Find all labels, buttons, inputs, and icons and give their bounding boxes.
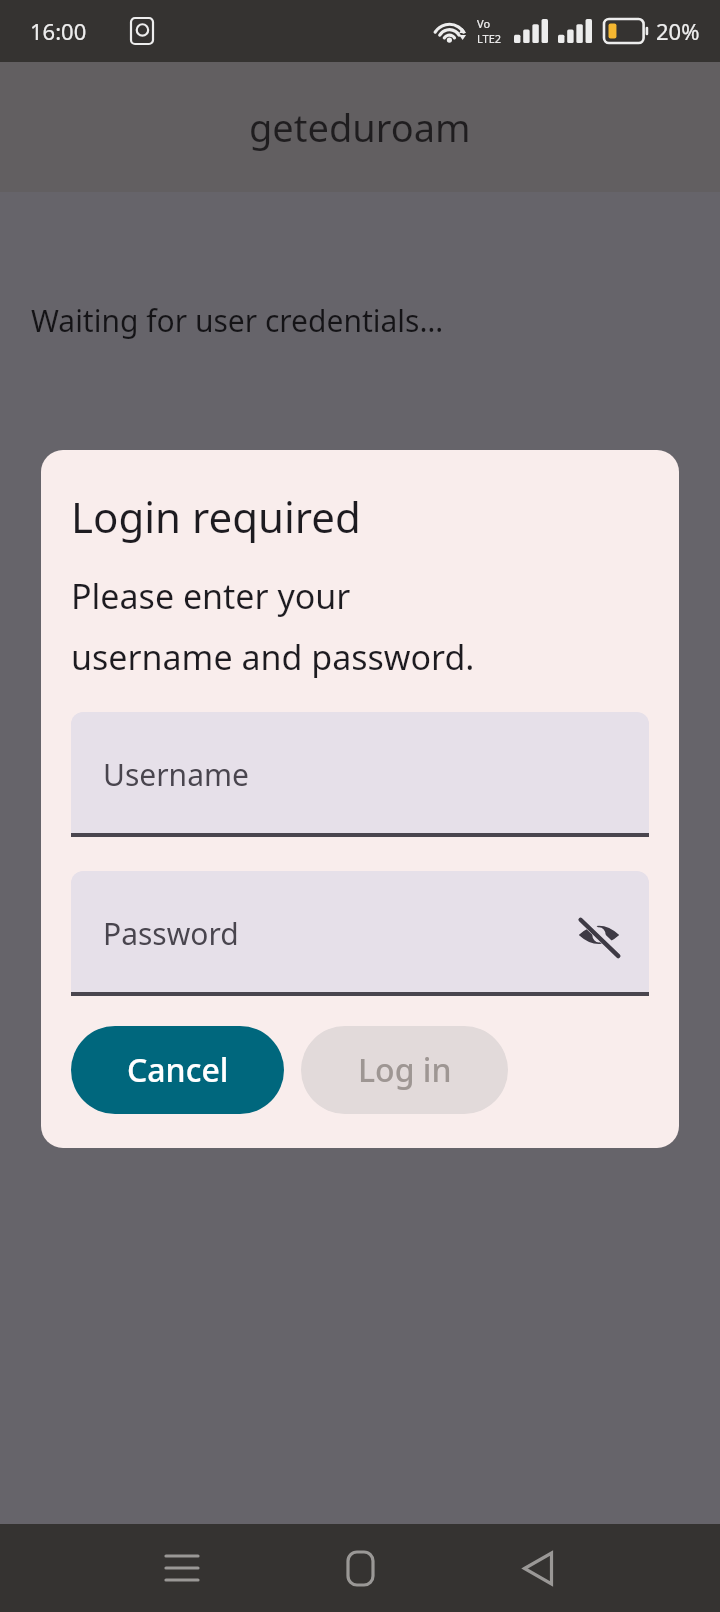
staticText: LTE2: [477, 31, 502, 46]
staticText: Waiting for user credentials…: [31, 300, 444, 341]
button[interactable]: Back: [498, 1528, 578, 1608]
staticText: Vo: [477, 16, 491, 31]
staticText: 16:00: [30, 16, 87, 46]
staticText: Login required: [71, 488, 361, 545]
button[interactable]: Show password: [563, 898, 635, 970]
button[interactable]: Recent apps: [142, 1528, 222, 1608]
button[interactable]: Password: [71, 871, 649, 996]
staticText: Please enter your username and password.: [71, 573, 475, 680]
staticText: Username: [103, 754, 249, 795]
button[interactable]: Home: [320, 1528, 400, 1608]
staticText: Cancel: [127, 1048, 229, 1092]
staticText: Log in: [358, 1048, 452, 1092]
button[interactable]: Log in: [301, 1026, 508, 1114]
staticText: Password: [103, 913, 239, 954]
staticText: geteduroam: [249, 101, 471, 153]
staticText: 20%: [656, 16, 700, 46]
button[interactable]: Cancel: [71, 1026, 284, 1114]
button[interactable]: Username: [71, 712, 649, 837]
